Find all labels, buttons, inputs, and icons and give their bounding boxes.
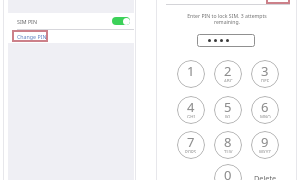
staticText: 5: [224, 98, 232, 116]
button[interactable]: 0: [214, 164, 242, 180]
staticText: PQRS: [185, 149, 197, 153]
staticText: 4: [187, 98, 195, 116]
button[interactable]: SIM PIN: [8, 13, 134, 29]
staticText: TUV: [224, 149, 233, 153]
staticText: 9: [261, 133, 269, 151]
staticText: JKL: [225, 114, 232, 118]
button[interactable]: 9: [251, 131, 279, 159]
staticText: WXYZ: [259, 149, 271, 153]
button[interactable]: 4: [177, 96, 205, 124]
staticText: 7: [187, 133, 195, 151]
staticText: Delete: [254, 173, 277, 180]
staticText: 3: [261, 62, 269, 80]
button[interactable]: 3: [251, 60, 279, 88]
staticText: Enter PIN to lock SIM. 3 attempts remain…: [165, 12, 289, 26]
staticText: ABC: [224, 78, 233, 82]
staticText: 2: [224, 62, 232, 80]
button[interactable]: Delete: [251, 170, 281, 180]
button[interactable]: 1: [177, 60, 205, 88]
staticText: 0: [224, 166, 232, 180]
button[interactable]: 2: [214, 60, 242, 88]
button[interactable]: 5: [214, 96, 242, 124]
staticText: Change PIN: [17, 33, 47, 40]
button[interactable]: PIN entry field: [197, 34, 255, 47]
staticText: 1: [187, 62, 195, 80]
button[interactable]: Change PIN: [8, 29, 134, 43]
staticText: 6: [261, 98, 269, 116]
staticText: 8: [224, 133, 232, 151]
staticText: SIM PIN: [17, 18, 37, 25]
button[interactable]: 7: [177, 131, 205, 159]
staticText: GHI: [187, 114, 195, 118]
button[interactable]: 8: [214, 131, 242, 159]
staticText: DEF: [261, 78, 269, 82]
staticText: MNO: [260, 114, 271, 118]
button[interactable]: SIM PIN switch, on: [112, 17, 130, 25]
button[interactable]: 6: [251, 96, 279, 124]
